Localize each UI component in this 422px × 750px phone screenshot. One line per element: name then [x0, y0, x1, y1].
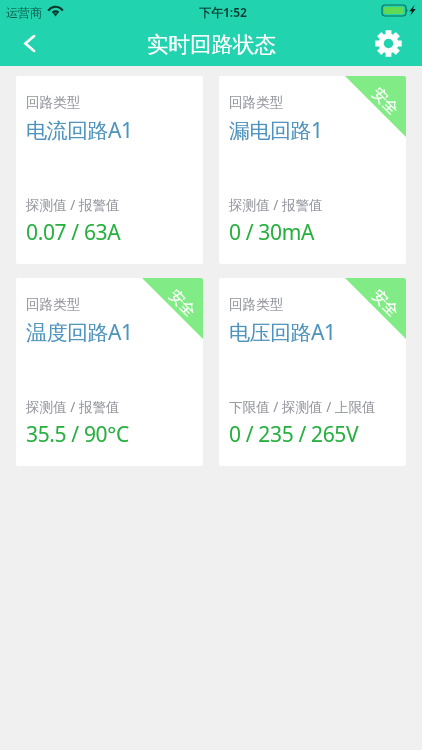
staticText: 安全	[368, 286, 402, 321]
staticText: 回路类型	[26, 296, 81, 313]
staticText: 安全	[165, 286, 199, 321]
button[interactable]: Settings	[368, 24, 410, 66]
staticText: 0 / 235 / 265V	[229, 420, 359, 449]
staticText: 回路类型	[26, 94, 81, 111]
staticText: 下午1:52	[199, 4, 247, 20]
staticText: 温度回路A1	[26, 318, 133, 347]
staticText: 下限值 / 探测值 / 上限值	[229, 397, 376, 416]
staticText: 回路类型	[229, 296, 284, 313]
staticText: 探测值 / 报警值	[26, 397, 120, 416]
staticText: 电压回路A1	[229, 318, 336, 347]
staticText: 运营商	[6, 5, 42, 20]
button[interactable]: 安全	[219, 278, 406, 466]
staticText: 35.5 / 90°C	[26, 420, 129, 449]
staticText: 回路类型	[229, 94, 284, 111]
staticText: 探测值 / 报警值	[26, 195, 120, 214]
staticText: 电流回路A1	[26, 116, 133, 145]
staticText: 0 / 30mA	[229, 218, 315, 247]
staticText: 0.07 / 63A	[26, 218, 121, 247]
button[interactable]: 回路类型	[16, 76, 203, 264]
button[interactable]: 安全	[16, 278, 203, 466]
button[interactable]: Back	[9, 25, 49, 65]
staticText: 安全	[368, 84, 402, 119]
staticText: 实时回路状态	[147, 31, 276, 58]
staticText: 漏电回路1	[229, 116, 323, 145]
button[interactable]: 安全	[219, 76, 406, 264]
staticText: 探测值 / 报警值	[229, 195, 323, 214]
